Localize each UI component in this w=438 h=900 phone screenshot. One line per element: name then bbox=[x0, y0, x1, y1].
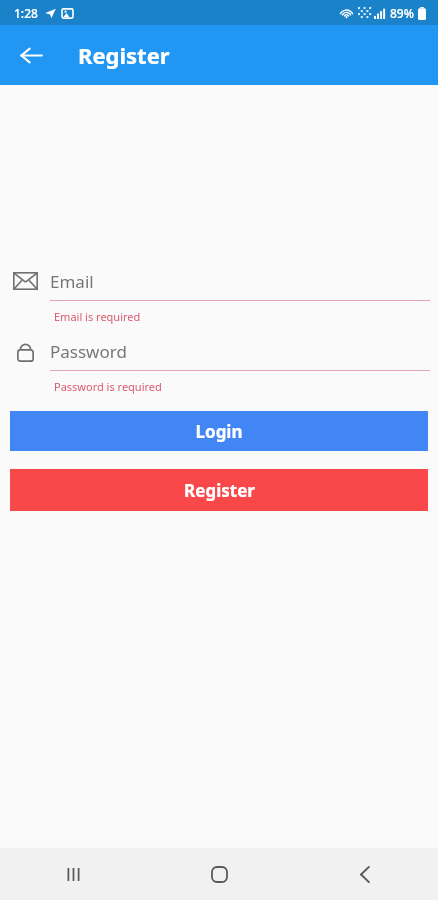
staticText: Login bbox=[195, 420, 243, 443]
staticText: Register bbox=[184, 479, 255, 502]
staticText: 89% bbox=[390, 5, 414, 21]
button[interactable]: Email bbox=[0, 262, 438, 300]
staticText: Email bbox=[50, 270, 94, 293]
staticText: Password is required bbox=[54, 379, 162, 394]
button[interactable]: Recents bbox=[0, 848, 146, 900]
staticText: Email is required bbox=[54, 309, 141, 324]
button[interactable]: Home bbox=[146, 848, 292, 900]
staticText: Register bbox=[78, 40, 170, 70]
button[interactable]: Back bbox=[10, 34, 52, 76]
staticText: Password bbox=[50, 340, 127, 363]
button[interactable]: Password bbox=[0, 332, 438, 370]
button[interactable]: Login bbox=[10, 411, 428, 451]
button[interactable]: Back bbox=[292, 848, 438, 900]
button[interactable]: Register bbox=[10, 469, 428, 511]
staticText: 1:28 bbox=[14, 5, 38, 21]
